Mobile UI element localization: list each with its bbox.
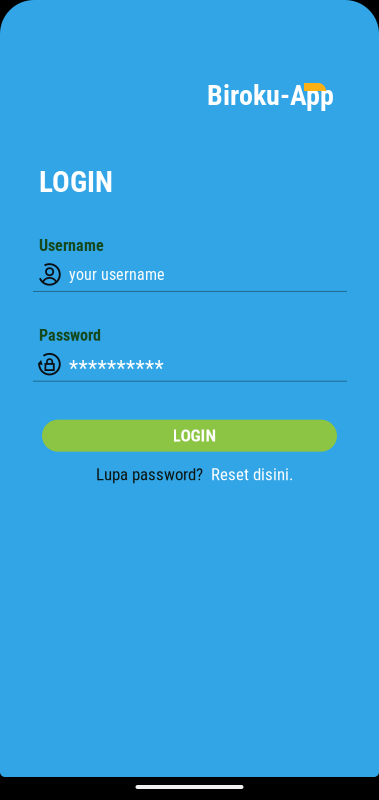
button[interactable]: LOGIN xyxy=(42,420,337,452)
staticText: * xyxy=(88,356,97,381)
staticText: your username xyxy=(69,265,165,284)
staticText: * xyxy=(135,356,144,381)
staticText: * xyxy=(69,356,78,381)
staticText: LOGIN xyxy=(172,425,216,446)
staticText: Lupa password? xyxy=(96,465,203,484)
staticText: Reset disini. xyxy=(211,465,293,484)
staticText: * xyxy=(145,356,154,381)
staticText: Username xyxy=(39,236,104,255)
staticText: * xyxy=(126,356,135,381)
staticText: Biroku-App xyxy=(207,79,334,112)
staticText: Password xyxy=(39,326,101,345)
staticText: * xyxy=(116,356,125,381)
staticText: * xyxy=(78,356,87,381)
staticText: * xyxy=(97,356,106,381)
button[interactable]: Reset disini. xyxy=(203,465,293,484)
staticText: * xyxy=(107,356,116,381)
staticText: LOGIN xyxy=(39,165,113,199)
staticText: * xyxy=(154,356,163,381)
